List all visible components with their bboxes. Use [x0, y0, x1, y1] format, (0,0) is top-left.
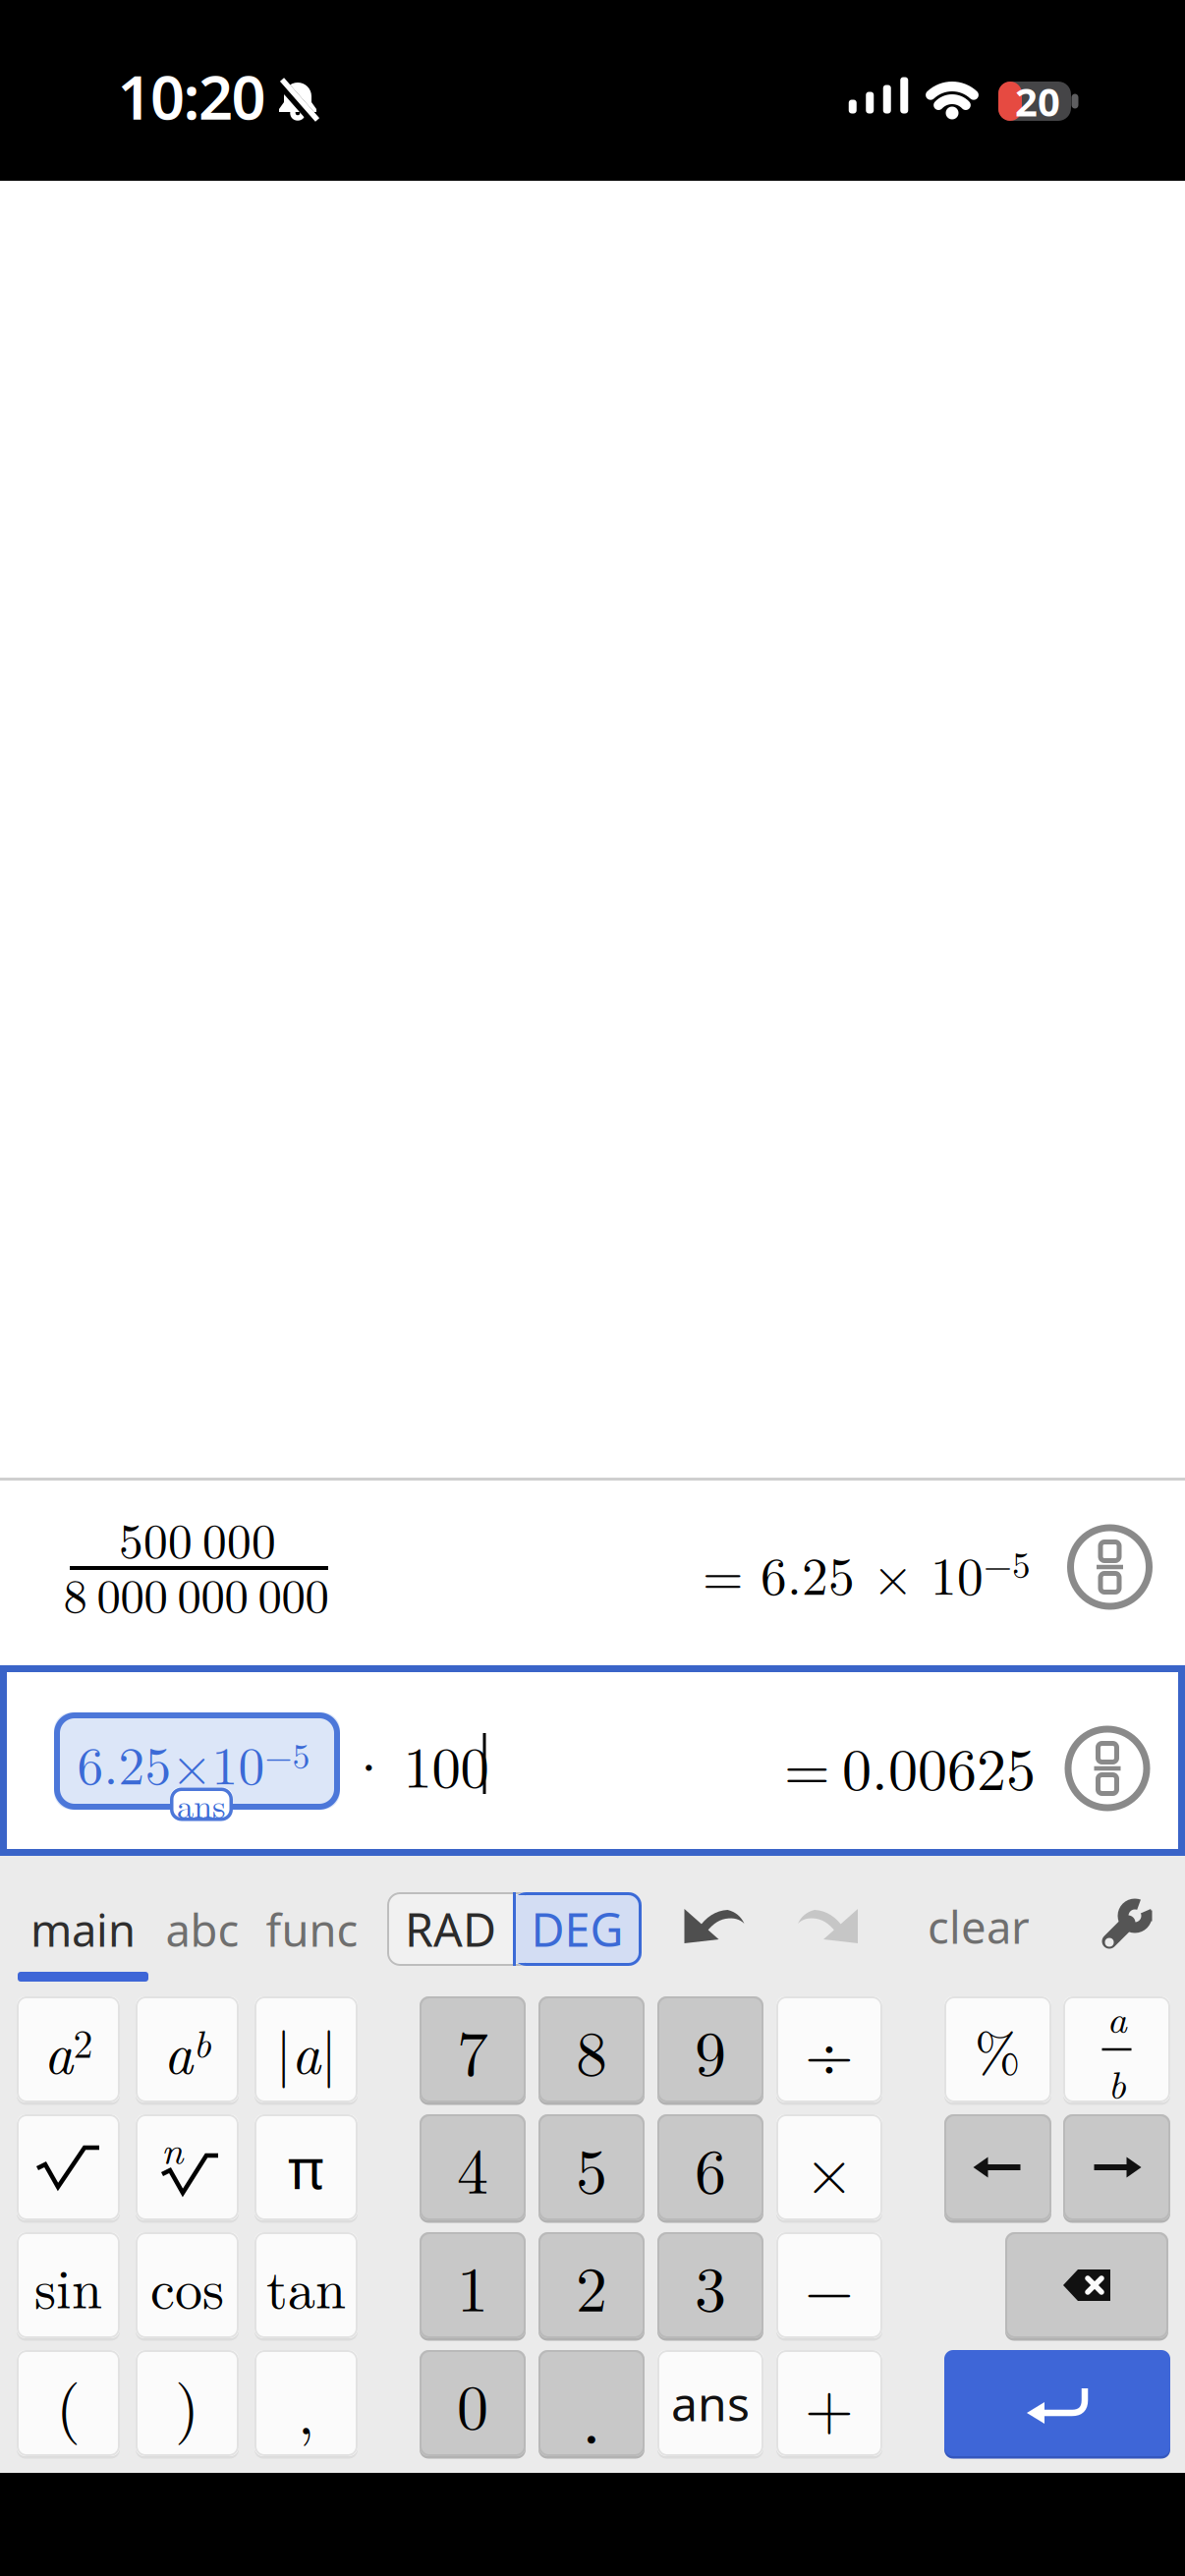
staticText: × — [805, 2123, 854, 2212]
staticText: 20 — [1015, 75, 1060, 127]
staticText: ans — [177, 1780, 226, 1828]
staticText: main — [30, 1900, 136, 1959]
button[interactable]: π — [254, 2113, 358, 2222]
button[interactable]: ans — [0, 1665, 354, 1856]
staticText: 1 — [457, 2241, 488, 2330]
button[interactable]: cos — [136, 2231, 239, 2340]
staticText: n — [161, 2120, 183, 2175]
button[interactable]: Backspace — [1005, 2231, 1168, 2340]
staticText: · 100 — [346, 1723, 489, 1804]
staticText: , — [298, 2366, 314, 2452]
staticText: 3 — [695, 2241, 726, 2330]
button[interactable]: . — [538, 2349, 645, 2458]
button[interactable]: Convert to fraction — [1058, 1714, 1157, 1822]
button[interactable]: ans — [657, 2349, 763, 2458]
button[interactable]: Convert to fraction — [1061, 1513, 1159, 1621]
staticText: + — [805, 2359, 854, 2448]
staticText: func — [266, 1900, 358, 1959]
button[interactable]: Move cursor left — [944, 2113, 1051, 2222]
staticText: = 0.00625 — [784, 1724, 1036, 1807]
button[interactable]: |a| — [254, 1995, 358, 2104]
button[interactable]: 9 — [657, 1995, 763, 2104]
button[interactable]: Settings — [1091, 1892, 1159, 1961]
staticText: 8 000 000 000 — [63, 1559, 329, 1626]
staticText: RAD — [405, 1899, 496, 1960]
button[interactable]: a2 — [17, 1995, 120, 2104]
staticText: 6.25×10−5 — [77, 1726, 310, 1799]
staticText: 0 — [457, 2359, 488, 2448]
staticText: cos — [150, 2246, 224, 2324]
button[interactable]: × — [776, 2113, 882, 2222]
button[interactable]: Enter — [944, 2349, 1170, 2458]
staticText: ) — [175, 2359, 199, 2448]
staticText: 500 000 — [119, 1503, 276, 1572]
staticText: 2 — [576, 2241, 607, 2330]
button[interactable]: 2 — [538, 2231, 645, 2340]
staticText: |a| — [276, 2010, 337, 2089]
button[interactable]: % — [944, 1995, 1051, 2104]
button[interactable]: 6 — [657, 2113, 763, 2222]
button[interactable]: 3 — [657, 2231, 763, 2340]
staticText: b — [1108, 2055, 1126, 2110]
button[interactable]: func — [266, 1900, 358, 1959]
button[interactable]: − — [776, 2231, 882, 2340]
button[interactable]: 8 — [538, 1995, 645, 2104]
staticText: . — [581, 2361, 602, 2465]
staticText: 6 — [695, 2123, 726, 2212]
button[interactable]: Redo — [796, 1897, 861, 1956]
button[interactable]: 5 — [538, 2113, 645, 2222]
staticText: 8 — [576, 2005, 607, 2094]
staticText: ÷ — [805, 2005, 854, 2094]
staticText: 5 — [576, 2123, 607, 2212]
staticText: abc — [166, 1900, 239, 1959]
staticText: 10:20 — [117, 56, 266, 136]
button[interactable]: ) — [136, 2349, 239, 2458]
button[interactable]: , — [254, 2349, 358, 2458]
staticText: − — [805, 2241, 854, 2330]
staticText: a — [1107, 1989, 1127, 2044]
button[interactable]: DEG — [513, 1892, 642, 1966]
staticText: clear — [928, 1897, 1030, 1956]
staticText: ans — [671, 2372, 750, 2434]
staticText: 4 — [457, 2123, 488, 2212]
staticText: DEG — [531, 1899, 623, 1960]
staticText: a2 — [44, 2010, 93, 2089]
button[interactable]: 1 — [420, 2231, 526, 2340]
button[interactable]: Square root — [17, 2113, 120, 2222]
button[interactable]: Fraction — [1063, 1995, 1170, 2104]
staticText: = 6.25 × 10−5 — [703, 1537, 1031, 1609]
staticText: ab — [164, 2010, 211, 2089]
button[interactable]: Nth root — [136, 2113, 239, 2222]
button[interactable]: 0 — [420, 2349, 526, 2458]
staticText: 9 — [695, 2005, 726, 2094]
staticText: sin — [34, 2246, 102, 2324]
button[interactable]: ÷ — [776, 1995, 882, 2104]
button[interactable]: abc — [166, 1900, 239, 1959]
staticText: 7 — [457, 2005, 488, 2094]
staticText: % — [975, 2010, 1021, 2088]
button[interactable]: 4 — [420, 2113, 526, 2222]
button[interactable]: RAD — [389, 1892, 512, 1966]
button[interactable]: 7 — [420, 1995, 526, 2104]
button[interactable]: tan — [254, 2231, 358, 2340]
button[interactable]: clear — [928, 1897, 1030, 1956]
button[interactable]: ab — [136, 1995, 239, 2104]
button[interactable]: Move cursor right — [1063, 2113, 1170, 2222]
button[interactable]: Undo — [681, 1897, 746, 1956]
button[interactable]: ( — [17, 2349, 120, 2458]
button[interactable]: sin — [17, 2231, 120, 2340]
staticText: tan — [266, 2246, 346, 2324]
staticText: ( — [56, 2359, 81, 2448]
staticText: π — [288, 2130, 324, 2205]
button[interactable]: + — [776, 2349, 882, 2458]
button[interactable]: main — [30, 1900, 136, 1959]
